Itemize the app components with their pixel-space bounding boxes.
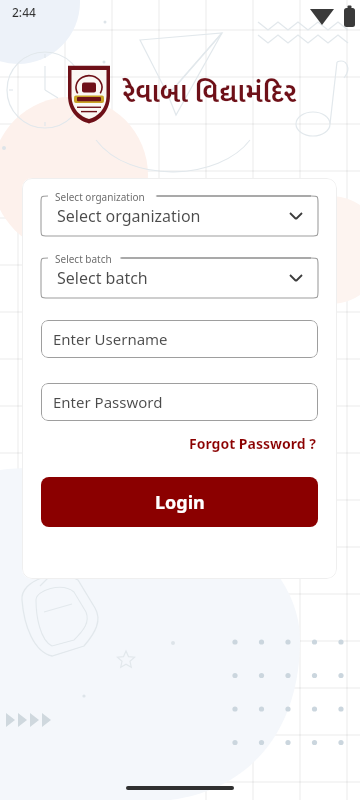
- staticText: Select batch: [57, 267, 148, 289]
- button[interactable]: Enter Password: [41, 383, 318, 421]
- staticText: Login: [155, 490, 205, 515]
- staticText: 2:44: [12, 4, 36, 20]
- button[interactable]: Login: [41, 477, 318, 527]
- button[interactable]: Select organization: [41, 196, 318, 236]
- staticText: Select organization: [55, 190, 145, 204]
- staticText: Forgot Password ?: [189, 434, 316, 453]
- button[interactable]: Forgot Password ?: [187, 432, 318, 455]
- staticText: Select organization: [57, 205, 201, 227]
- staticText: Select batch: [55, 252, 112, 266]
- staticText: Enter Password: [53, 392, 163, 412]
- staticText: Enter Username: [53, 329, 168, 349]
- button[interactable]: Select batch: [41, 258, 318, 298]
- button[interactable]: Enter Username: [41, 320, 318, 358]
- staticText: રેવાબા વિદ્યામંદિર: [122, 71, 297, 116]
